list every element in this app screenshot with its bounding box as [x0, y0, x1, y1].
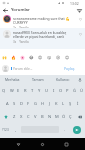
staticText: Z — [13, 114, 16, 120]
button[interactable]: Shift — [0, 110, 11, 123]
staticText: 3s Yanıtla — [13, 40, 29, 44]
staticText: Y — [38, 88, 41, 94]
button[interactable]: Back — [0, 6, 11, 14]
staticText: 😊 — [65, 55, 70, 60]
staticText: R — [24, 88, 27, 94]
button[interactable]: Ç — [67, 110, 74, 123]
button[interactable]: Like — [77, 30, 83, 38]
staticText: ?123 — [2, 128, 9, 132]
button[interactable]: Emoji — [63, 53, 72, 62]
staticText: Q — [2, 88, 6, 94]
button[interactable]: İ — [74, 97, 81, 110]
button[interactable]: Tamam — [25, 75, 50, 84]
button[interactable]: V — [32, 110, 39, 123]
button[interactable]: M — [53, 110, 60, 123]
staticText: Merhaba — [5, 77, 20, 82]
button[interactable]: H — [39, 97, 46, 110]
button[interactable]: Ş — [67, 97, 74, 110]
button[interactable]: Merhaba — [0, 75, 25, 84]
button[interactable]: , — [11, 123, 20, 136]
button[interactable]: ?123 — [0, 123, 11, 136]
button[interactable]: A — [4, 97, 11, 110]
button[interactable]: Ö — [60, 110, 67, 123]
button[interactable]: N — [46, 110, 53, 123]
button[interactable]: E — [15, 84, 22, 97]
staticText: Kullanıcı — [56, 77, 70, 82]
staticText: M — [55, 114, 59, 120]
staticText: A — [6, 101, 9, 107]
button[interactable]: Y — [36, 84, 43, 97]
staticText: Ç — [69, 114, 72, 120]
staticText: nasadfff00 Sonsuzluk en kucaklar, ellerd… — [13, 30, 77, 39]
staticText: Yorum ekle... — [13, 67, 33, 71]
button[interactable]: Share — [74, 6, 85, 14]
button[interactable]: B — [39, 110, 46, 123]
staticText: L — [62, 101, 65, 107]
staticText: G — [34, 101, 37, 107]
button[interactable]: Ü — [78, 84, 85, 97]
button[interactable]: Home — [37, 139, 48, 150]
staticText: 😮 — [47, 55, 52, 60]
staticText: Tamam — [32, 77, 44, 82]
button[interactable]: Send — [73, 126, 81, 134]
button[interactable]: Recent apps — [61, 139, 72, 150]
button[interactable]: Emoji — [0, 53, 9, 62]
staticText: K — [55, 101, 58, 107]
button[interactable]: F — [25, 97, 32, 110]
staticText: J — [49, 101, 51, 107]
staticText: V — [34, 114, 37, 120]
button[interactable]: U — [43, 84, 50, 97]
button[interactable]: Emoji — [45, 53, 54, 62]
button[interactable]: Emoji — [27, 53, 36, 62]
staticText: P — [66, 88, 69, 94]
button[interactable]: K — [53, 97, 60, 110]
button[interactable]: Emoji — [54, 53, 63, 62]
staticText: Ü — [80, 88, 83, 94]
staticText: Paylaş — [64, 66, 75, 71]
staticText: I — [53, 88, 55, 94]
button[interactable]: T — [29, 84, 36, 97]
staticText: N — [48, 114, 52, 120]
button[interactable]: C — [25, 110, 32, 123]
button[interactable]: D — [18, 97, 25, 110]
staticText: E — [17, 88, 20, 94]
button[interactable]: Backspace — [74, 110, 85, 123]
staticText: 13:02 — [70, 1, 79, 6]
staticText: U — [45, 88, 48, 94]
button[interactable]: Voice input — [75, 75, 85, 84]
button[interactable]: Ğ — [71, 84, 78, 97]
staticText: W — [10, 88, 14, 94]
button[interactable]: S — [11, 97, 18, 110]
staticText: Ğ — [73, 88, 76, 94]
staticText: F — [27, 101, 30, 107]
staticText: Ö — [62, 114, 66, 120]
button[interactable]: J — [46, 97, 53, 110]
staticText: 🙌 — [2, 55, 7, 60]
button[interactable]: W — [8, 84, 15, 97]
button[interactable]: Emoji — [36, 53, 45, 62]
button[interactable]: Kullanıcı — [50, 75, 75, 84]
button[interactable]: P — [64, 84, 71, 97]
button[interactable]: Emoji — [18, 53, 27, 62]
staticText: 🔥 — [11, 55, 16, 60]
button[interactable]: Like — [77, 15, 83, 23]
button[interactable]: Back — [13, 139, 24, 150]
button[interactable]: L — [60, 97, 67, 110]
button[interactable]: Q — [0, 84, 8, 97]
staticText: 😢 — [56, 55, 61, 60]
staticText: . — [64, 127, 66, 133]
button[interactable]: Emoji — [9, 53, 18, 62]
staticText: , — [15, 127, 17, 133]
button[interactable]: X — [18, 110, 25, 123]
button[interactable]: O — [57, 84, 64, 97]
button[interactable]: Paylaş — [63, 65, 76, 72]
staticText: Yorumlar — [11, 7, 30, 13]
staticText: D — [20, 101, 23, 107]
button[interactable]: Z — [11, 110, 18, 123]
button[interactable]: R — [22, 84, 29, 97]
button[interactable]: I — [50, 84, 57, 97]
button[interactable]: G — [32, 97, 39, 110]
staticText: T — [31, 88, 34, 94]
